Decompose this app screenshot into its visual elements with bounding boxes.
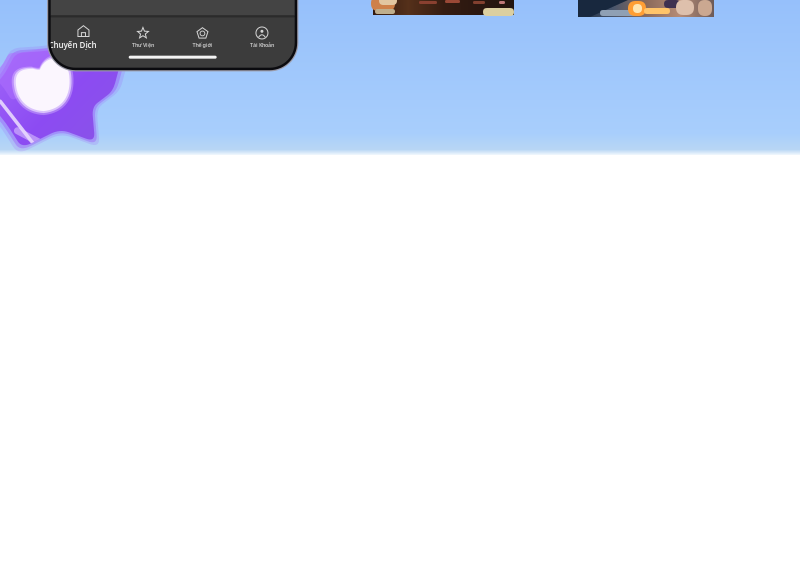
staticText: Tài Khoản [250, 41, 274, 49]
staticText: Thư Viện [132, 41, 154, 49]
button[interactable]: Thế giới [173, 27, 232, 49]
staticText: Thế giới [192, 41, 212, 49]
button[interactable]: Thư Viện [113, 27, 173, 49]
staticText: Chuyển Dịch [48, 40, 96, 50]
button[interactable]: Tài Khoản [232, 27, 292, 49]
button[interactable]: Chuyển Dịch [54, 25, 113, 50]
